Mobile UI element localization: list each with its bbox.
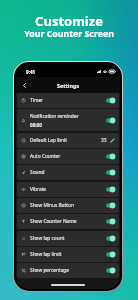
button[interactable]: Vibrate [17,182,119,197]
staticText: 33 [101,137,107,144]
button[interactable]: Toggle [105,250,116,259]
button[interactable]: Toggle [105,152,116,161]
button[interactable]: Toggle [105,217,116,226]
staticText: Your Counter Screen [24,28,114,40]
staticText: Show lap count [30,235,65,242]
staticText: 08:00 [30,122,42,128]
staticText: Timer [30,97,44,104]
button[interactable]: 33 [101,137,116,144]
button[interactable]: Toggle [105,185,116,194]
button[interactable]: Toggle [105,168,116,177]
button[interactable]: Show lap count [17,231,119,246]
staticText: Notification reminder [30,113,79,120]
staticText: Show percentage [30,267,70,274]
button[interactable]: Default Lap limit [17,133,119,148]
staticText: Customize [35,12,103,30]
button[interactable]: Toggle [105,266,116,275]
staticText: Show Counter Name [30,218,77,225]
button[interactable]: Show Counter Name [17,214,119,229]
button[interactable]: Toggle [105,116,116,125]
staticText: Vibrate [30,186,47,193]
button[interactable]: Back [20,81,29,90]
button[interactable]: Show Minus Button [17,198,119,213]
button[interactable]: Notification reminder [17,109,119,131]
button[interactable]: Toggle [105,234,116,243]
staticText: Settings [57,82,80,89]
button[interactable]: Sound [17,165,119,180]
button[interactable]: Show percentage [17,263,119,278]
button[interactable]: Toggle [105,201,116,210]
staticText: 9:41 [26,69,36,75]
button[interactable]: Timer [17,93,119,108]
staticText: Default Lap limit [30,137,68,144]
button[interactable]: Toggle [105,96,116,105]
button[interactable]: Show lap limit [17,247,119,262]
staticText: Auto Counter [30,153,61,160]
staticText: Show Minus Button [30,202,74,209]
staticText: Show lap limit [30,251,62,258]
button[interactable]: Auto Counter [17,149,119,164]
staticText: Sound [30,169,45,176]
